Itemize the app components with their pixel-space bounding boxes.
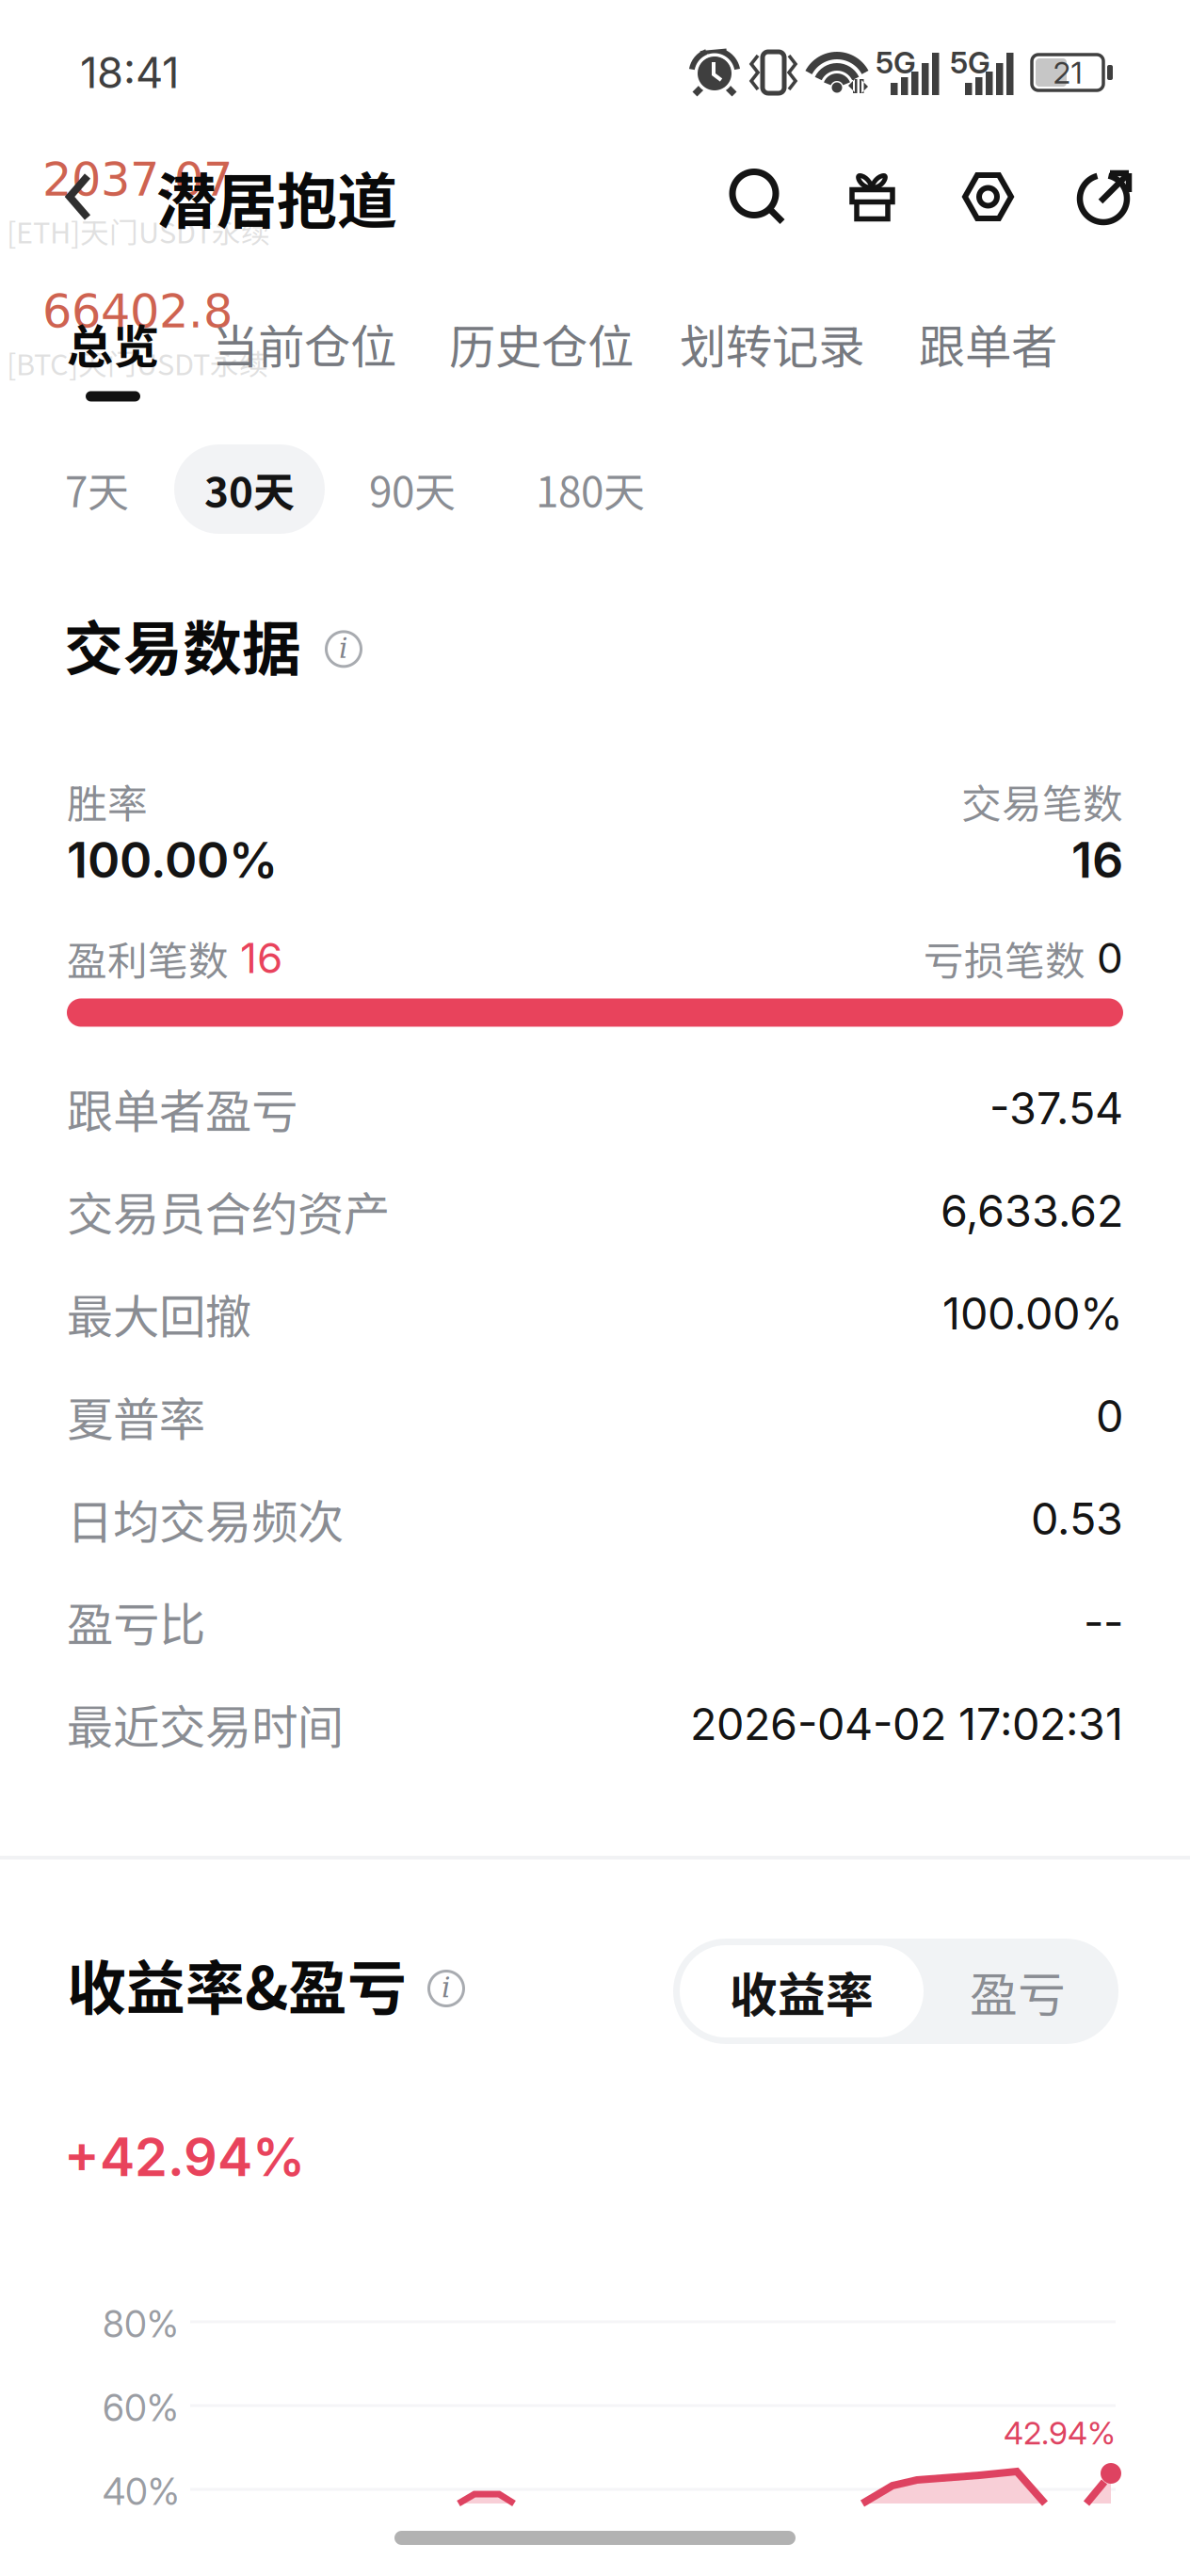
- staticText: 历史仓位: [449, 310, 634, 377]
- button[interactable]: 跟单者: [919, 310, 1057, 401]
- staticText: 21: [1053, 54, 1082, 91]
- staticText: 收益率&盈亏: [67, 1941, 407, 2026]
- staticText: 30天: [204, 459, 295, 519]
- staticText: 收益率: [730, 1957, 874, 2026]
- button[interactable]: 30天: [174, 444, 325, 534]
- staticText: 潜居抱道: [156, 153, 397, 240]
- button[interactable]: 当前仓位: [212, 310, 396, 401]
- staticText: 0: [1085, 933, 1123, 983]
- staticText: 最近交易时间: [67, 1690, 344, 1758]
- staticText: 16: [1071, 830, 1123, 889]
- staticText: 40%: [103, 2470, 180, 2514]
- staticText: 盈利笔数: [67, 929, 229, 987]
- staticText: 交易员合约资产: [67, 1177, 390, 1244]
- staticText: 5G: [876, 44, 916, 81]
- staticText: i: [339, 632, 348, 665]
- staticText: 5G: [950, 44, 990, 81]
- staticText: 16: [229, 933, 282, 983]
- staticText: 180天: [536, 459, 645, 519]
- staticText: 划转记录: [680, 310, 864, 377]
- staticText: 夏普率: [67, 1382, 205, 1450]
- staticText: 7天: [65, 459, 129, 519]
- staticText: 80%: [103, 2302, 179, 2346]
- staticText: 42.94%: [1004, 2414, 1116, 2452]
- staticText: --: [1084, 1595, 1123, 1648]
- staticText: [BTC]天门USDT永续: [7, 342, 268, 384]
- staticText: 100.00%: [67, 830, 278, 889]
- button[interactable]: 7天: [44, 444, 150, 534]
- staticText: 交易数据: [64, 602, 301, 687]
- button[interactable]: 划转记录: [680, 310, 864, 401]
- staticText: 总览: [67, 310, 159, 377]
- staticText: 2026-04-02 17:02:31: [690, 1697, 1123, 1750]
- button[interactable]: Search: [730, 169, 785, 225]
- staticText: [ETH]天门USDT永续: [7, 210, 270, 252]
- staticText: 18:41: [80, 47, 179, 98]
- staticText: 胜率: [67, 772, 148, 830]
- staticText: 60%: [103, 2386, 179, 2430]
- staticText: +42.94%: [64, 2125, 305, 2189]
- button[interactable]: 历史仓位: [449, 310, 634, 401]
- button[interactable]: 90天: [336, 444, 489, 534]
- button[interactable]: 盈亏: [924, 1945, 1112, 2037]
- staticText: -37.54: [989, 1082, 1123, 1135]
- staticText: 0.53: [1031, 1492, 1123, 1545]
- staticText: 90天: [369, 459, 456, 519]
- staticText: 0: [1096, 1389, 1123, 1443]
- staticText: 跟单者盈亏: [67, 1075, 297, 1142]
- staticText: 日均交易频次: [67, 1485, 344, 1552]
- staticText: 66402.8: [42, 284, 233, 338]
- staticText: 100.00%: [942, 1287, 1123, 1340]
- staticText: 2037.07: [42, 153, 233, 207]
- button[interactable]: 180天: [506, 444, 675, 534]
- button[interactable]: 总览: [67, 310, 159, 401]
- staticText: 跟单者: [919, 310, 1057, 377]
- staticText: 交易笔数: [961, 772, 1123, 830]
- staticText: 当前仓位: [212, 310, 396, 377]
- staticText: 6,633.62: [941, 1184, 1123, 1237]
- staticText: i: [442, 1971, 451, 2004]
- staticText: 亏损笔数: [924, 929, 1085, 987]
- button[interactable]: 收益率: [680, 1945, 924, 2037]
- button[interactable]: Back: [36, 150, 121, 244]
- button[interactable]: Share: [1076, 168, 1134, 226]
- staticText: 最大回撤: [67, 1280, 251, 1347]
- staticText: 盈亏: [970, 1957, 1066, 2026]
- button[interactable]: Settings: [961, 171, 1015, 222]
- button[interactable]: Rewards: [848, 171, 896, 223]
- staticText: 盈亏比: [67, 1588, 205, 1655]
